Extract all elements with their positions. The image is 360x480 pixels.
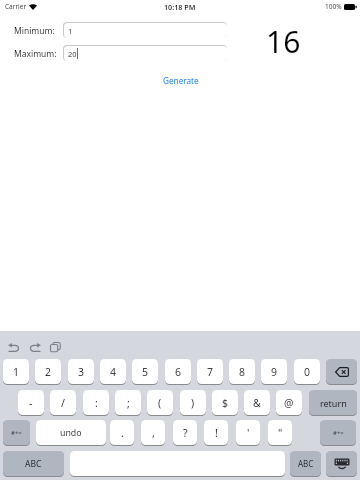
button[interactable]: 1: [64, 23, 227, 38]
button[interactable]: @: [276, 390, 302, 415]
staticText: 20: [64, 49, 77, 59]
button[interactable]: [50, 342, 61, 353]
button[interactable]: [8, 342, 20, 352]
staticText: 1: [13, 365, 20, 379]
staticText: &: [253, 396, 261, 410]
button[interactable]: (: [147, 390, 173, 415]
staticText: return: [320, 397, 347, 409]
staticText: Maximum:: [14, 48, 57, 60]
staticText: 0: [304, 365, 311, 379]
button[interactable]: 3: [68, 359, 94, 384]
staticText: 5: [142, 365, 149, 379]
button[interactable]: ABC: [290, 451, 321, 476]
button[interactable]: .: [110, 420, 134, 445]
button[interactable]: ": [268, 420, 292, 445]
button[interactable]: ABC: [3, 451, 64, 476]
button[interactable]: 20: [64, 46, 227, 61]
staticText: 10:18 PM: [164, 2, 196, 11]
button[interactable]: $: [212, 390, 238, 415]
staticText: ABC: [298, 458, 314, 469]
button[interactable]: undo: [36, 420, 106, 445]
button[interactable]: Generate: [151, 72, 211, 88]
staticText: :: [95, 396, 98, 410]
staticText: $: [222, 396, 229, 410]
button[interactable]: ?: [173, 420, 197, 445]
button[interactable]: [70, 451, 285, 476]
staticText: @: [284, 396, 294, 410]
staticText: .: [121, 426, 124, 440]
button[interactable]: ': [236, 420, 260, 445]
staticText: #+=: [11, 429, 22, 437]
button[interactable]: ): [180, 390, 206, 415]
staticText: 1: [64, 26, 73, 36]
button[interactable]: 6: [165, 359, 191, 384]
button[interactable]: -: [18, 390, 44, 415]
staticText: (: [158, 396, 162, 410]
button[interactable]: ,: [141, 420, 165, 445]
button[interactable]: return: [309, 390, 357, 415]
staticText: ': [247, 426, 250, 440]
button[interactable]: &: [244, 390, 270, 415]
button[interactable]: 7: [197, 359, 223, 384]
staticText: /: [61, 396, 65, 410]
staticText: ): [191, 396, 195, 410]
staticText: 9: [271, 365, 278, 379]
button[interactable]: !: [204, 420, 228, 445]
staticText: 6: [175, 365, 182, 379]
button[interactable]: 5: [132, 359, 158, 384]
staticText: ?: [183, 426, 188, 440]
staticText: !: [215, 426, 218, 440]
button[interactable]: /: [50, 390, 76, 415]
staticText: 100%: [325, 2, 342, 11]
button[interactable]: #+=: [320, 420, 356, 445]
staticText: -: [29, 396, 33, 410]
staticText: #+=: [333, 429, 344, 437]
staticText: undo: [60, 427, 82, 439]
button[interactable]: [326, 359, 357, 384]
button[interactable]: [29, 342, 41, 352]
staticText: 4: [110, 365, 117, 379]
staticText: Carrier: [5, 2, 27, 11]
button[interactable]: ;: [115, 390, 141, 415]
button[interactable]: 2: [35, 359, 61, 384]
staticText: 7: [207, 365, 214, 379]
staticText: 8: [239, 365, 246, 379]
button[interactable]: :: [83, 390, 109, 415]
staticText: ABC: [25, 458, 42, 470]
button[interactable]: 0: [294, 359, 320, 384]
staticText: Generate: [163, 75, 199, 86]
staticText: ,: [152, 426, 155, 440]
staticText: 2: [45, 365, 52, 379]
button[interactable]: #+=: [3, 420, 30, 445]
button[interactable]: [326, 451, 357, 476]
staticText: ;: [127, 396, 130, 410]
button[interactable]: 1: [3, 359, 29, 384]
staticText: Minimum:: [14, 25, 55, 37]
button[interactable]: 9: [261, 359, 287, 384]
button[interactable]: 8: [229, 359, 255, 384]
staticText: ": [278, 426, 283, 440]
button[interactable]: 4: [100, 359, 126, 384]
staticText: 3: [78, 365, 85, 379]
staticText: 16: [266, 21, 301, 59]
